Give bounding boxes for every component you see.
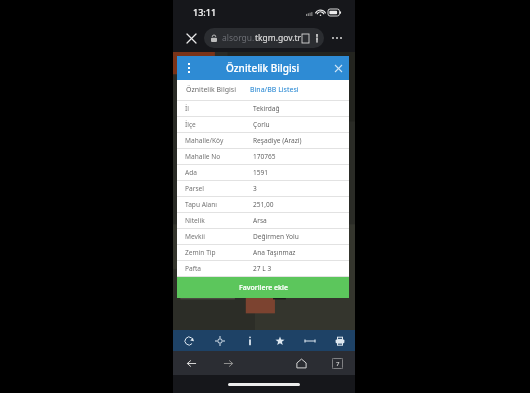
button[interactable]: Home	[283, 351, 319, 375]
staticText: alsorgu.	[222, 32, 255, 44]
staticText: Nitelik	[185, 216, 253, 225]
button[interactable]: Öznitelik Bilgisi	[185, 82, 237, 98]
staticText: Değirmen Yolu	[253, 232, 299, 241]
button[interactable]: Info	[235, 330, 265, 351]
staticText: Parsel	[185, 184, 253, 193]
button[interactable]: İl	[177, 101, 349, 116]
staticText: Ada	[185, 168, 253, 177]
staticText: Zemin Tip	[185, 248, 253, 257]
staticText: 27 L 3	[253, 264, 272, 273]
staticText: Tekirdağ	[253, 104, 280, 113]
button[interactable]: Mevkii	[177, 229, 349, 244]
staticText: 1591	[253, 168, 269, 177]
button[interactable]: alsorgu.	[204, 28, 324, 48]
staticText: Arsa	[253, 216, 267, 225]
staticText: Favorilere ekle	[239, 283, 288, 293]
staticText: İl	[185, 104, 253, 113]
button[interactable]: Mahalle No	[177, 149, 349, 164]
staticText: Ana Taşınmaz	[253, 248, 296, 257]
button[interactable]: Measure	[295, 330, 325, 351]
staticText: Tapu Alanı	[185, 200, 253, 209]
button[interactable]: İlçe	[177, 117, 349, 132]
button[interactable]: Zemin Tip	[177, 245, 349, 260]
staticText: Mahalle No	[185, 152, 253, 161]
button[interactable]: Bina/BB Listesi	[249, 82, 300, 98]
staticText: 251,00	[253, 200, 274, 209]
button[interactable]: Favorilere ekle	[177, 277, 349, 298]
staticText: Mahalle/Köy	[185, 136, 253, 145]
staticText: Mevkii	[185, 232, 253, 241]
staticText: tkgm.gov.tr	[255, 32, 302, 44]
staticText: Öznitelik Bilgisi	[226, 61, 300, 75]
button[interactable]: Print	[325, 330, 355, 351]
button[interactable]: My location	[204, 330, 235, 351]
button[interactable]: Close dialog	[327, 56, 349, 80]
staticText: Çorlu	[253, 120, 270, 129]
staticText: 7	[336, 360, 340, 368]
button[interactable]: Forward	[210, 351, 247, 375]
button[interactable]: Nitelik	[177, 213, 349, 228]
button[interactable]: Parsel	[177, 181, 349, 196]
staticText: İlçe	[185, 120, 253, 129]
button[interactable]: Menu	[177, 56, 201, 80]
staticText: 170765	[253, 152, 276, 161]
button[interactable]: Pafta	[177, 261, 349, 276]
staticText: Bina/BB Listesi	[250, 85, 299, 95]
button[interactable]: Mahalle/Köy	[177, 133, 349, 148]
staticText: 13:11	[193, 6, 217, 18]
button[interactable]: Refresh	[173, 330, 204, 351]
staticText: 3	[253, 184, 257, 193]
button[interactable]: Favorites	[265, 330, 295, 351]
staticText: Reşadiye (Arazi)	[253, 136, 302, 145]
staticText: Öznitelik Bilgisi	[186, 85, 236, 95]
staticText: Pafta	[185, 264, 253, 273]
button[interactable]: Tabs, 7 open	[319, 351, 355, 375]
button[interactable]: More options	[327, 28, 347, 48]
button[interactable]: Close	[181, 28, 201, 48]
button[interactable]: Back	[173, 351, 210, 375]
button[interactable]: Tapu Alanı	[177, 197, 349, 212]
button[interactable]: Ada	[177, 165, 349, 180]
